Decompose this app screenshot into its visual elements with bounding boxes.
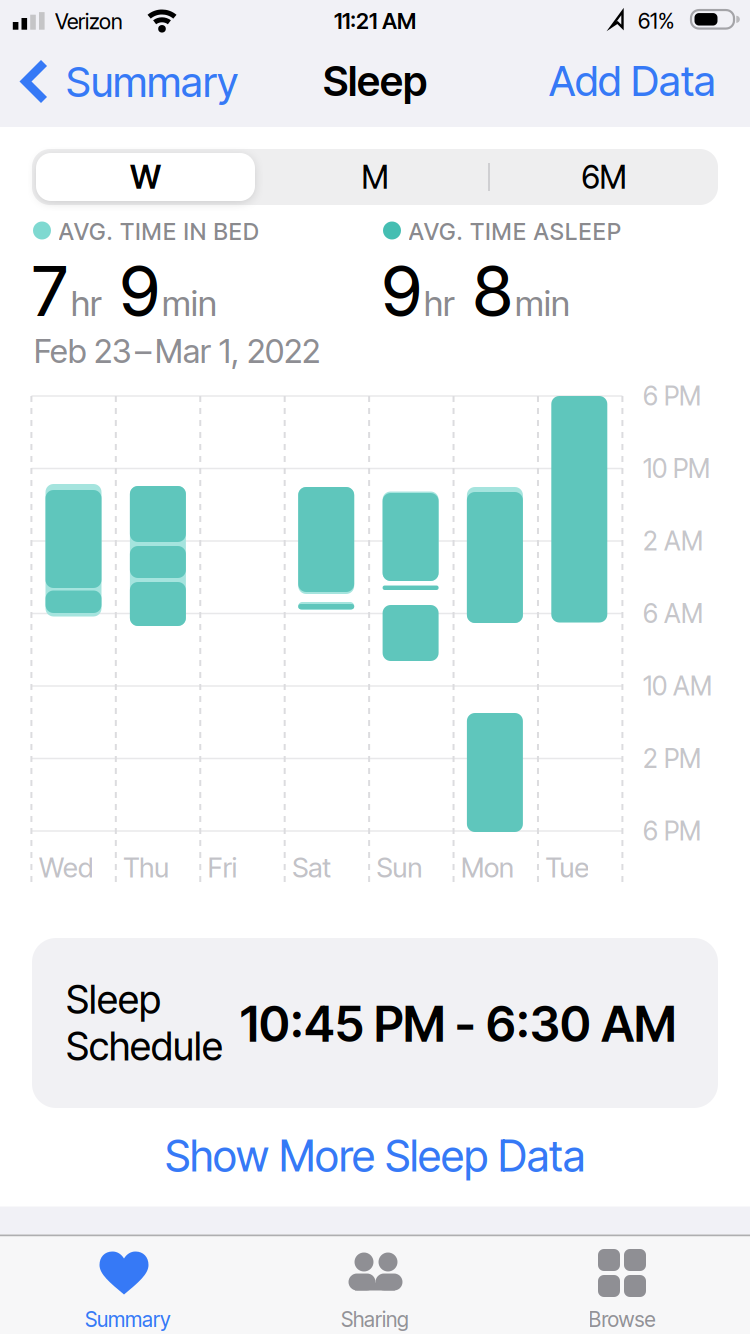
staticText: Wed — [39, 851, 93, 884]
staticText: Browse — [588, 1307, 655, 1332]
staticText: Mon — [461, 851, 514, 884]
button[interactable]: 6M — [499, 153, 709, 201]
staticText: Sleep — [323, 56, 427, 106]
button[interactable]: Show More Sleep Data — [115, 1128, 635, 1184]
button[interactable]: M — [270, 153, 480, 201]
staticText: 2 AM — [643, 525, 703, 557]
staticText: Verizon — [55, 9, 123, 34]
staticText: hr — [71, 282, 101, 324]
button[interactable]: Summary — [18, 60, 248, 104]
staticText: 8 — [473, 249, 512, 333]
button[interactable]: W — [36, 153, 255, 201]
staticText: 61% — [638, 8, 674, 34]
staticText: W — [130, 158, 161, 196]
staticText: Fri — [208, 851, 237, 884]
staticText: 6 AM — [643, 598, 703, 629]
staticText: Thu — [123, 851, 169, 884]
button[interactable]: Sleep Schedule — [32, 938, 718, 1108]
staticText: Summary — [66, 57, 238, 107]
staticText: Tue — [545, 851, 589, 884]
staticText: AVG. TIME IN BED — [58, 217, 259, 246]
staticText: AVG. TIME ASLEEP — [408, 217, 621, 246]
staticText: 9 — [120, 249, 159, 333]
staticText: Sun — [377, 851, 423, 884]
staticText: Sleep Schedule — [66, 976, 223, 1070]
staticText: Sat — [292, 851, 331, 884]
button[interactable]: Add Data — [516, 59, 716, 103]
staticText: Show More Sleep Data — [165, 1130, 585, 1182]
staticText: 10 PM — [643, 453, 710, 484]
staticText: 9 — [382, 249, 421, 333]
staticText: M — [361, 158, 388, 196]
staticText: min — [515, 282, 570, 324]
staticText: Summary — [85, 1307, 171, 1332]
staticText: 7 — [32, 249, 68, 333]
staticText: 6 PM — [643, 380, 701, 412]
staticText: Sharing — [341, 1307, 409, 1332]
staticText: 11:21 AM — [334, 8, 416, 34]
staticText: 2 PM — [643, 743, 701, 774]
staticText: 6M — [581, 158, 626, 196]
staticText: 10 AM — [643, 670, 712, 702]
staticText: 10:45 PM - 6:30 AM — [240, 995, 676, 1053]
staticText: 6 PM — [643, 815, 701, 847]
button[interactable]: Summary — [34, 1236, 214, 1334]
button[interactable]: Browse — [532, 1236, 712, 1334]
staticText: hr — [424, 282, 454, 324]
staticText: Feb 23 – Mar 1, 2022 — [34, 331, 320, 371]
staticText: Add Data — [549, 56, 716, 106]
staticText: min — [162, 282, 217, 324]
button[interactable]: Sharing — [285, 1236, 465, 1334]
